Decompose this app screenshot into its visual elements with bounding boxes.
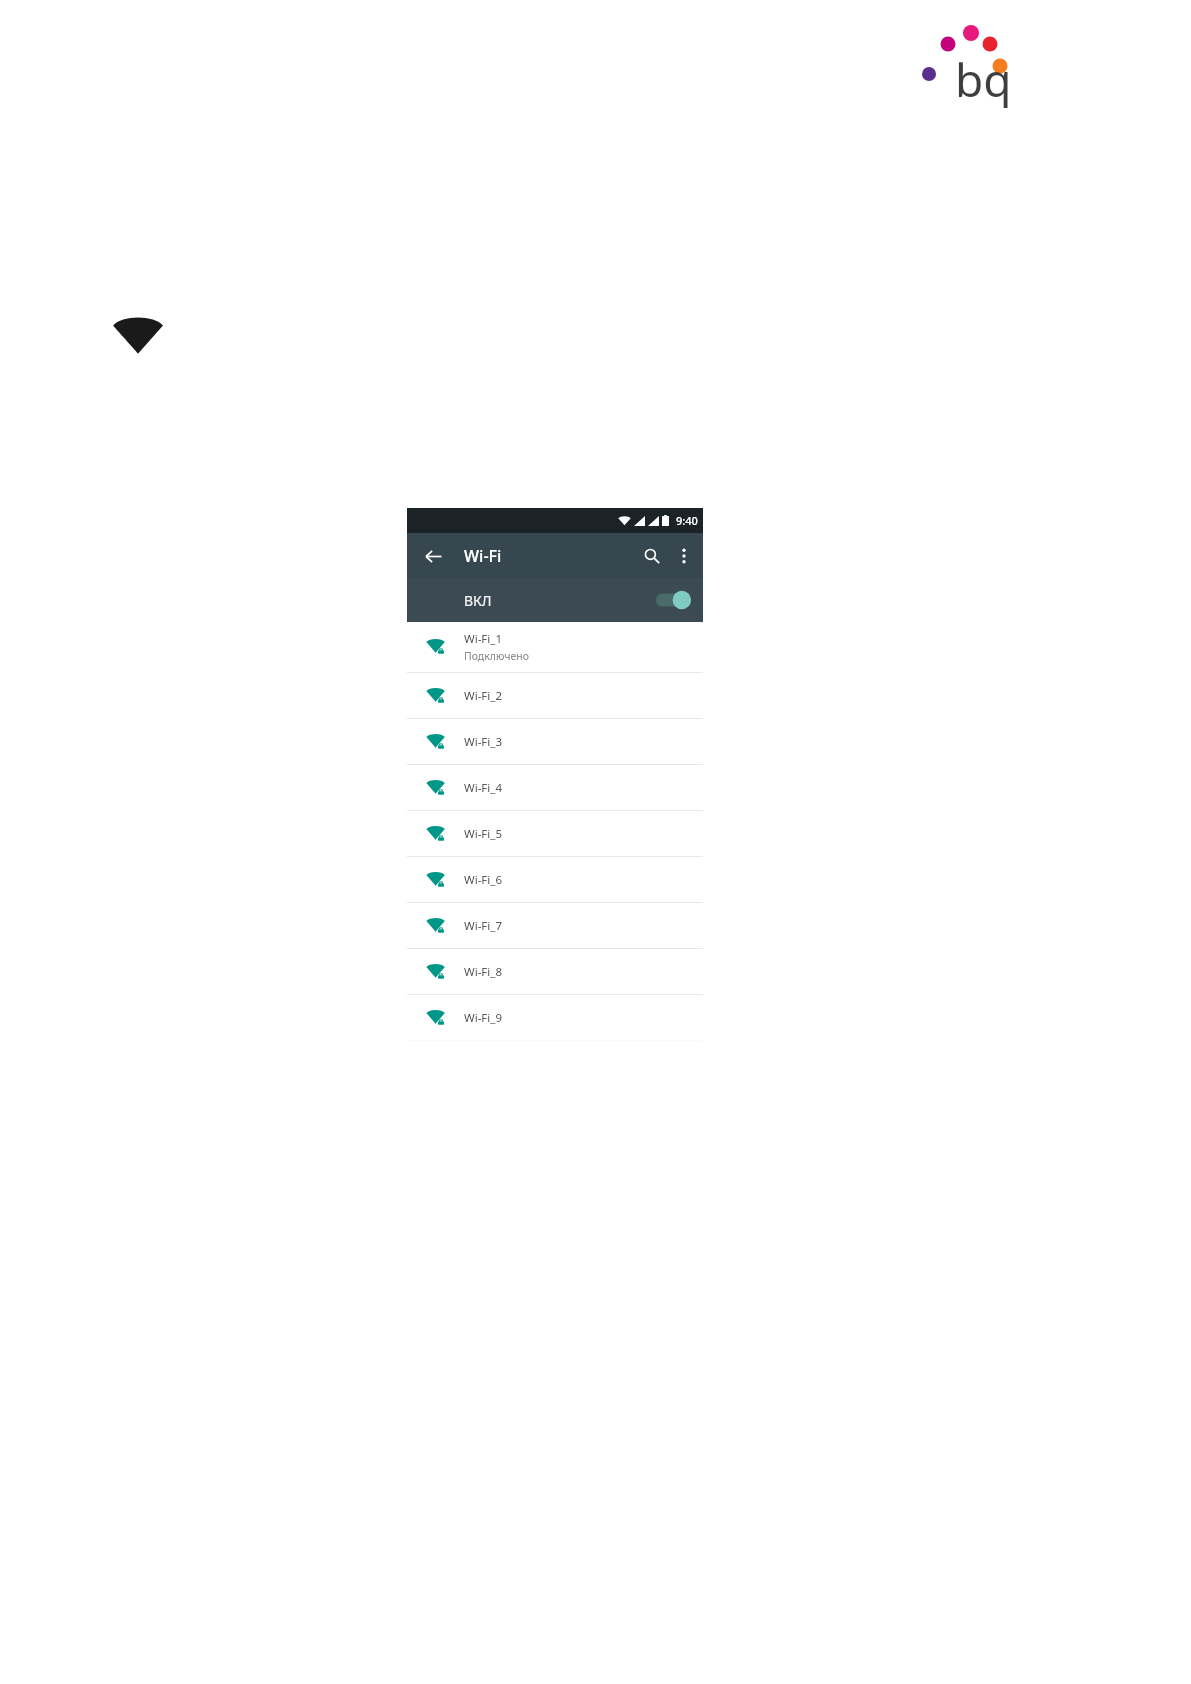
staticText: Wi-Fi_1 — [464, 631, 502, 647]
staticText: Подключено — [464, 649, 529, 663]
button[interactable]: Wi-Fi_4 — [407, 765, 703, 810]
staticText: Wi-Fi — [464, 545, 502, 567]
staticText: Wi-Fi_5 — [464, 826, 502, 842]
button[interactable]: Wi-Fi_8 — [407, 949, 703, 994]
staticText: 9:40 — [676, 513, 698, 528]
staticText: Wi-Fi_6 — [464, 872, 502, 888]
button[interactable]: Search — [635, 539, 669, 573]
staticText: Wi-Fi_8 — [464, 964, 502, 980]
button[interactable]: Wi-Fi_3 — [407, 719, 703, 764]
staticText: Wi-Fi_7 — [464, 918, 502, 934]
staticText: Wi-Fi_2 — [464, 688, 502, 704]
staticText: Wi-Fi_4 — [464, 780, 502, 796]
button[interactable]: More options — [669, 541, 699, 571]
staticText: bq — [955, 48, 1012, 111]
button[interactable]: ВКЛ — [407, 578, 703, 622]
staticText: ВКЛ — [464, 591, 492, 610]
button[interactable]: Back — [417, 540, 449, 572]
button[interactable]: Wi-Fi_1 — [407, 622, 703, 672]
button[interactable]: Wi-Fi_2 — [407, 673, 703, 718]
button[interactable]: Wi-Fi_6 — [407, 857, 703, 902]
staticText: Wi-Fi_9 — [464, 1010, 502, 1026]
button[interactable]: Wi-Fi_5 — [407, 811, 703, 856]
button[interactable]: Wi-Fi_7 — [407, 903, 703, 948]
staticText: Wi-Fi_3 — [464, 734, 502, 750]
button[interactable]: Wi-Fi_9 — [407, 995, 703, 1040]
